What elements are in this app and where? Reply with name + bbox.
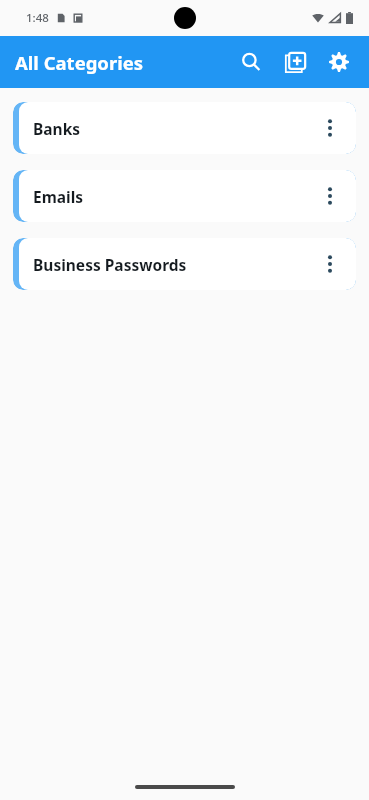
staticText: Emails (33, 186, 310, 207)
button[interactable]: More options for Emails (310, 176, 350, 216)
button[interactable]: Emails (13, 170, 356, 222)
button[interactable]: Business Passwords (13, 238, 356, 290)
button[interactable]: Banks (13, 102, 356, 154)
staticText: All Categories (15, 50, 144, 75)
staticText: Business Passwords (33, 254, 310, 275)
button[interactable]: More options for Banks (310, 108, 350, 148)
staticText: 1:48 (26, 10, 49, 26)
button[interactable]: Search (229, 40, 273, 84)
button[interactable]: Settings (317, 40, 361, 84)
staticText: Banks (33, 118, 310, 139)
button[interactable]: Add category (273, 40, 317, 84)
button[interactable]: More options for Business Passwords (310, 244, 350, 284)
